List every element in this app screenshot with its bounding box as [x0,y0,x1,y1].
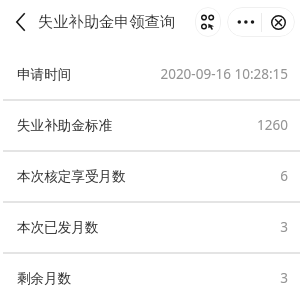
button[interactable]: Back [7,9,33,35]
staticText: 剩余月数 [17,270,72,287]
staticText: 失业补助金标准 [17,117,113,134]
button[interactable]: Mini program menu [195,7,221,37]
staticText: 本次已发月数 [17,219,99,236]
button[interactable]: 申请时间 [0,49,300,100]
button[interactable]: 本次已发月数 [0,202,300,253]
staticText: 本次核定享受月数 [17,168,126,185]
button[interactable]: More options [227,7,261,37]
staticText: 6 [280,167,288,185]
staticText: 剩余月数 [17,270,72,287]
button[interactable]: 本次核定享受月数 [0,151,300,202]
staticText: 本次核定享受月数 [17,168,126,185]
button[interactable]: 失业补助金标准 [0,100,300,151]
button[interactable]: 剩余月数 [0,253,300,300]
staticText: 申请时间 [17,66,72,83]
staticText: 3 [280,269,288,287]
staticText: 3 [280,218,288,236]
button[interactable]: Close [262,7,295,37]
staticText: 1260 [257,116,288,134]
staticText: 本次已发月数 [17,219,99,236]
staticText: 失业补助金申领查询 [38,12,176,31]
staticText: 申请时间 [17,66,72,83]
staticText: 2020-09-16 10:28:15 [160,65,288,83]
staticText: 失业补助金标准 [17,117,113,134]
